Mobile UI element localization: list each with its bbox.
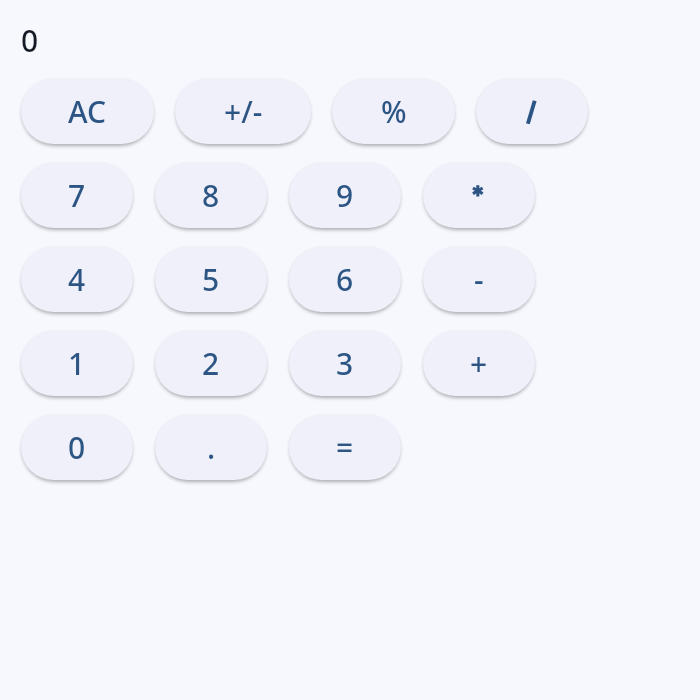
button[interactable]: =	[289, 415, 401, 480]
staticText: =	[336, 427, 354, 468]
staticText: 0	[68, 427, 86, 468]
button[interactable]: +	[423, 331, 535, 396]
button[interactable]: 9	[289, 163, 401, 228]
button[interactable]: Divide	[476, 79, 588, 144]
staticText: AC	[68, 91, 107, 132]
button[interactable]: .	[155, 415, 267, 480]
staticText: 7	[68, 175, 86, 216]
staticText: 4	[68, 259, 86, 300]
staticText: +	[470, 343, 488, 384]
button[interactable]: 8	[155, 163, 267, 228]
staticText: 2	[202, 343, 220, 384]
staticText: 8	[202, 175, 220, 216]
button[interactable]: +/-	[175, 79, 311, 144]
staticText: 9	[336, 175, 354, 216]
staticText: %	[381, 91, 407, 132]
staticText: .	[207, 427, 216, 468]
button[interactable]: %	[332, 79, 455, 144]
staticText: 5	[202, 259, 220, 300]
button[interactable]: 7	[21, 163, 133, 228]
button[interactable]: 4	[21, 247, 133, 312]
button[interactable]: 0	[21, 415, 133, 480]
staticText: 0	[21, 20, 39, 61]
button[interactable]: 5	[155, 247, 267, 312]
staticText: +/-	[224, 91, 263, 132]
staticText: 6	[336, 259, 354, 300]
button[interactable]: Multiply	[423, 163, 535, 228]
staticText: -	[474, 259, 484, 300]
button[interactable]: -	[423, 247, 535, 312]
button[interactable]: 6	[289, 247, 401, 312]
button[interactable]: 3	[289, 331, 401, 396]
staticText: 1	[68, 343, 86, 384]
staticText: 3	[336, 343, 354, 384]
button[interactable]: AC	[21, 79, 154, 144]
button[interactable]: 2	[155, 331, 267, 396]
button[interactable]: 1	[21, 331, 133, 396]
